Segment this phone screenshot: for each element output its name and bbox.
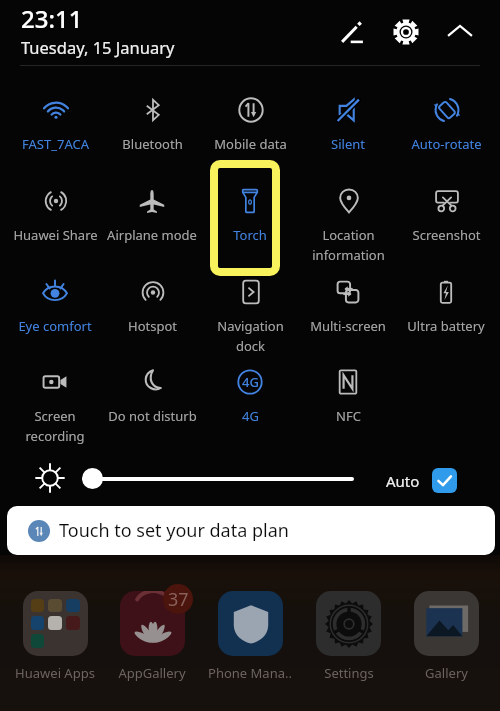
staticText: FAST_7ACA xyxy=(22,135,89,153)
button[interactable]: Hotspot xyxy=(104,262,200,357)
button[interactable]: Ultra battery xyxy=(398,262,494,357)
button[interactable]: Screen recording xyxy=(7,352,103,447)
button[interactable]: Phone Mana.. xyxy=(202,584,298,688)
button[interactable]: Eye comfort xyxy=(7,262,103,357)
staticText: Gallery xyxy=(425,664,468,682)
staticText: Huawei Share xyxy=(13,226,98,244)
staticText: Tuesday, 15 January xyxy=(21,36,175,58)
staticText: 4G xyxy=(242,373,259,391)
button[interactable]: Settings xyxy=(382,8,430,56)
button[interactable]: Edit xyxy=(328,8,376,56)
button[interactable]: NFC xyxy=(300,352,396,447)
staticText: Auto xyxy=(386,471,420,491)
staticText: NFC xyxy=(336,407,361,425)
button[interactable]: Airplane mode xyxy=(104,171,200,266)
staticText: 4G xyxy=(242,407,259,425)
staticText: Do not disturb xyxy=(108,407,197,425)
button[interactable]: Do not disturb xyxy=(104,352,200,447)
staticText: Mobile data xyxy=(214,135,287,153)
button[interactable]: Auto-rotate xyxy=(398,80,494,175)
staticText: Settings xyxy=(324,664,374,682)
staticText: Touch to set your data plan xyxy=(59,518,289,543)
staticText: 37 xyxy=(168,587,189,612)
button[interactable]: Collapse xyxy=(436,8,484,56)
staticText: Torch xyxy=(233,226,267,244)
staticText: AppGallery xyxy=(118,664,186,682)
button[interactable]: Silent xyxy=(300,80,396,175)
button[interactable]: Torch xyxy=(202,171,298,266)
staticText: Airplane mode xyxy=(107,226,197,244)
staticText: Bluetooth xyxy=(122,135,183,153)
staticText: Ultra battery xyxy=(407,317,485,335)
staticText: Silent xyxy=(331,135,365,153)
staticText: Screen recording xyxy=(25,407,85,445)
staticText: Navigation dock xyxy=(217,317,284,355)
button[interactable]: Huawei Apps xyxy=(7,584,103,688)
button[interactable]: Multi-screen xyxy=(300,262,396,357)
button[interactable]: 37 xyxy=(104,584,200,688)
button[interactable]: Huawei Share xyxy=(7,171,103,266)
button[interactable]: Screenshot xyxy=(398,171,494,266)
staticText: Screenshot xyxy=(412,226,481,244)
button[interactable]: Touch to set your data plan xyxy=(7,506,495,555)
staticText: Huawei Apps xyxy=(15,664,95,682)
button[interactable]: Settings xyxy=(300,584,396,688)
button[interactable]: Auto xyxy=(386,468,457,500)
staticText: 23:11 xyxy=(21,2,83,35)
button[interactable]: 4G xyxy=(202,352,298,447)
button[interactable]: Gallery xyxy=(398,584,494,688)
button[interactable]: Bluetooth xyxy=(104,80,200,175)
button[interactable]: Navigation dock xyxy=(202,262,298,357)
staticText: Hotspot xyxy=(128,317,177,335)
staticText: Multi-screen xyxy=(310,317,386,335)
staticText: Location information xyxy=(312,226,385,264)
staticText: Phone Mana.. xyxy=(208,664,292,682)
button[interactable] xyxy=(82,468,354,489)
staticText: Auto-rotate xyxy=(411,135,482,153)
button[interactable]: FAST_7ACA xyxy=(7,80,103,175)
button[interactable]: Brightness xyxy=(33,461,67,495)
button[interactable]: Location information xyxy=(300,171,396,266)
staticText: Eye comfort xyxy=(18,317,92,335)
button[interactable]: Mobile data xyxy=(202,80,298,175)
